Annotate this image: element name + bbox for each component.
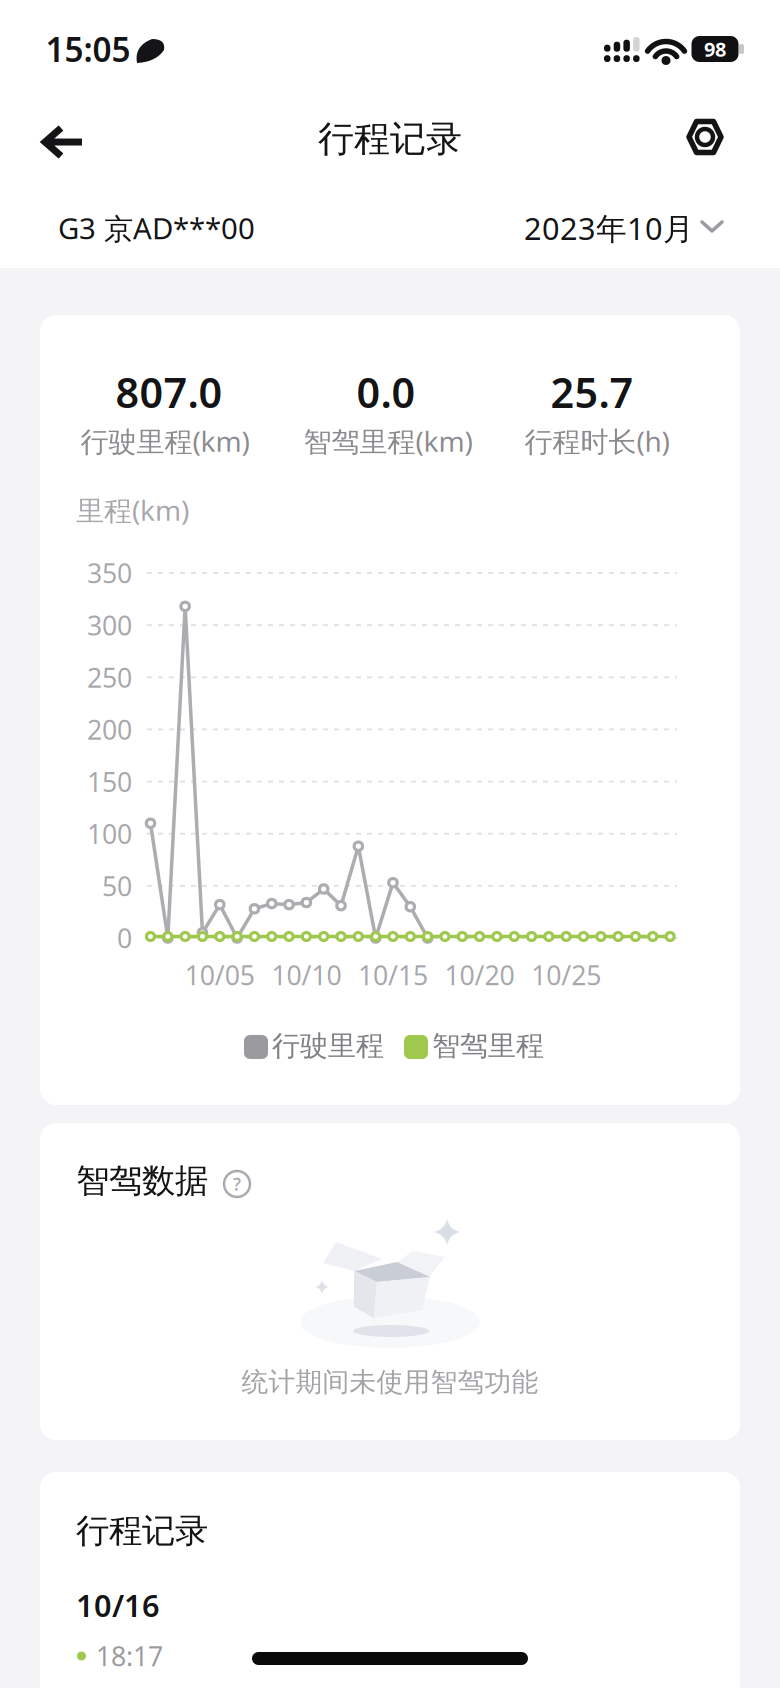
staticText: 行程记录: [318, 117, 462, 161]
staticText: 10/05: [185, 957, 255, 993]
staticText: 100: [87, 816, 132, 851]
staticText: 行驶里程(km): [80, 422, 249, 460]
staticText: ?: [233, 1172, 241, 1195]
staticText: 10/25: [531, 957, 601, 993]
staticText: 200: [87, 712, 132, 747]
staticText: 10/16: [76, 1585, 160, 1625]
staticText: 250: [87, 660, 132, 695]
staticText: 300: [87, 607, 132, 643]
staticText: 智驾数据: [76, 1160, 208, 1201]
staticText: G3 京AD***00: [58, 208, 255, 247]
staticText: 行驶里程: [272, 1029, 384, 1063]
staticText: 10/15: [358, 957, 428, 993]
staticText: 行程记录: [76, 1510, 208, 1551]
button[interactable]: 18:17: [77, 1638, 277, 1674]
staticText: 行程时长(h): [524, 422, 669, 460]
button[interactable]: 2023年10月: [524, 208, 722, 248]
staticText: 统计期间未使用智驾功能: [241, 1366, 538, 1398]
staticText: 里程(km): [76, 491, 189, 529]
staticText: 18:17: [96, 1638, 163, 1674]
staticText: 25.7: [550, 365, 633, 419]
button[interactable]: ?: [220, 1167, 254, 1201]
staticText: 98: [704, 36, 726, 62]
staticText: 150: [87, 764, 132, 799]
staticText: 50: [102, 868, 132, 904]
staticText: 10/10: [271, 957, 341, 993]
staticText: 350: [87, 555, 132, 591]
staticText: 15:05: [45, 27, 130, 71]
staticText: 智驾里程(km): [303, 422, 472, 460]
staticText: 10/20: [445, 957, 515, 993]
staticText: 智驾里程: [432, 1029, 544, 1063]
button[interactable]: [683, 115, 727, 159]
staticText: 2023年10月: [524, 208, 694, 248]
staticText: 0: [117, 920, 132, 956]
staticText: 0.0: [356, 365, 415, 419]
staticText: 807.0: [115, 365, 222, 419]
button[interactable]: [42, 108, 86, 168]
